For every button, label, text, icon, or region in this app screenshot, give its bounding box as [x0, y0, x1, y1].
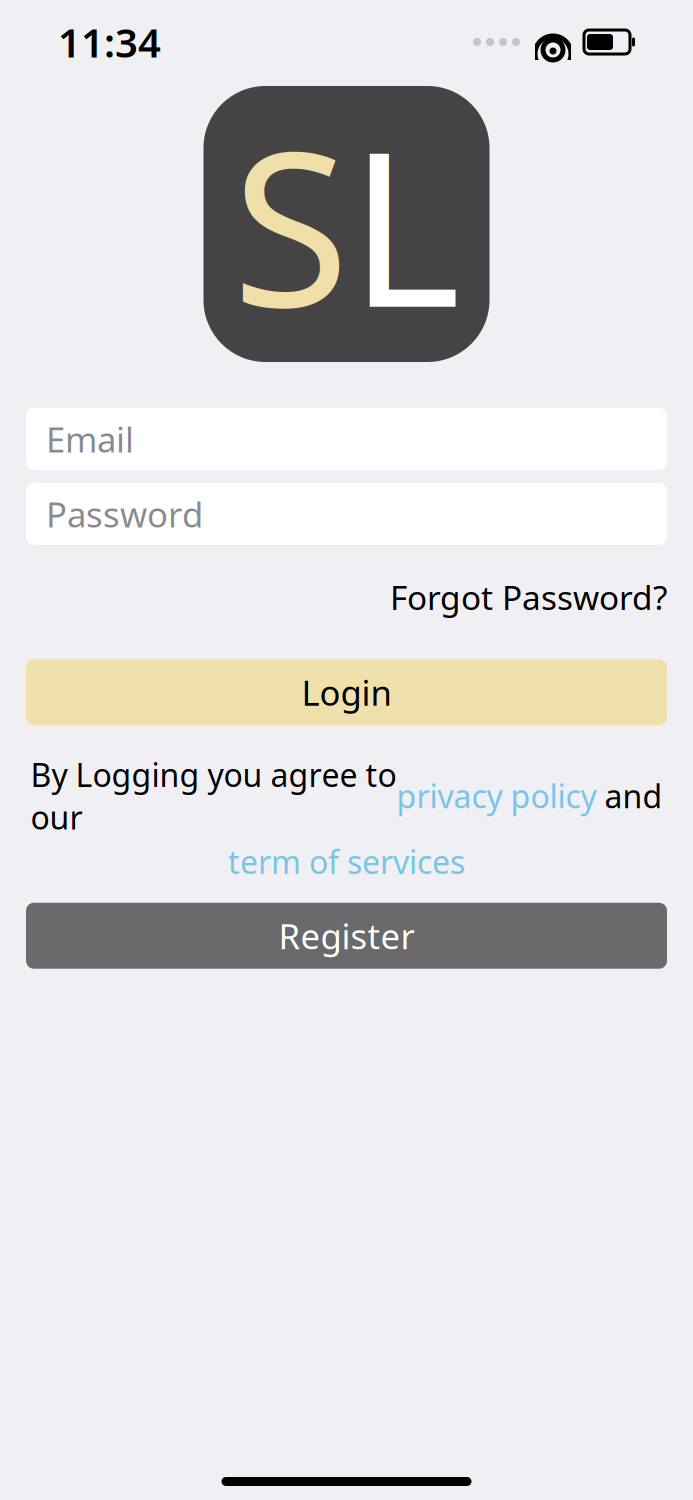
staticText: Password	[46, 491, 203, 537]
staticText: 11:34	[58, 15, 161, 68]
staticText: privacy policy	[396, 774, 596, 817]
button[interactable]: Forgot Password?	[390, 575, 667, 619]
staticText: L	[349, 82, 461, 366]
button[interactable]: term of services	[228, 840, 465, 883]
button[interactable]: Login	[26, 659, 667, 725]
staticText: term of services	[228, 840, 465, 883]
staticText: S	[232, 82, 349, 366]
staticText: Register	[278, 913, 414, 959]
staticText: By Logging you agree to our	[30, 753, 396, 838]
button[interactable]: Register	[26, 903, 667, 969]
staticText: Login	[301, 669, 391, 715]
button[interactable]: privacy policy	[396, 774, 596, 817]
staticText: and	[596, 774, 662, 817]
staticText: Email	[46, 416, 134, 462]
staticText: Forgot Password?	[390, 575, 667, 619]
